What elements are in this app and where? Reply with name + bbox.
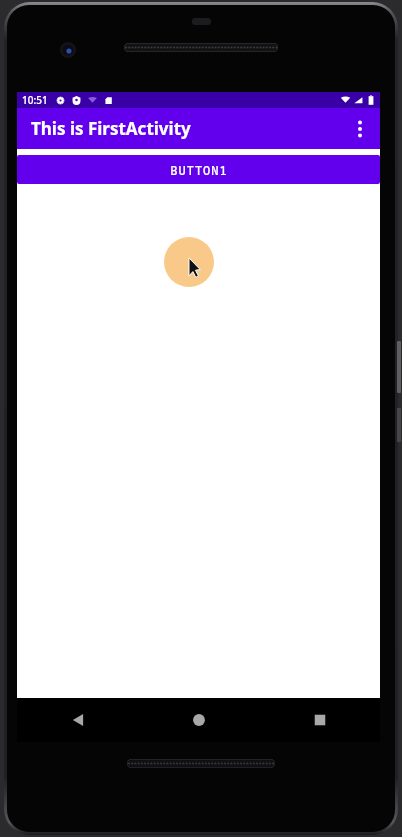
staticText: BUTTON1 xyxy=(170,162,228,178)
staticText: 10:51 xyxy=(22,93,48,107)
staticText: This is FirstActivity xyxy=(31,117,191,140)
button[interactable]: Recent apps xyxy=(259,698,380,742)
button[interactable]: More options xyxy=(340,109,380,149)
button[interactable]: Home xyxy=(138,698,259,742)
button[interactable]: BUTTON1 xyxy=(17,155,380,184)
button[interactable]: Back xyxy=(17,698,138,742)
